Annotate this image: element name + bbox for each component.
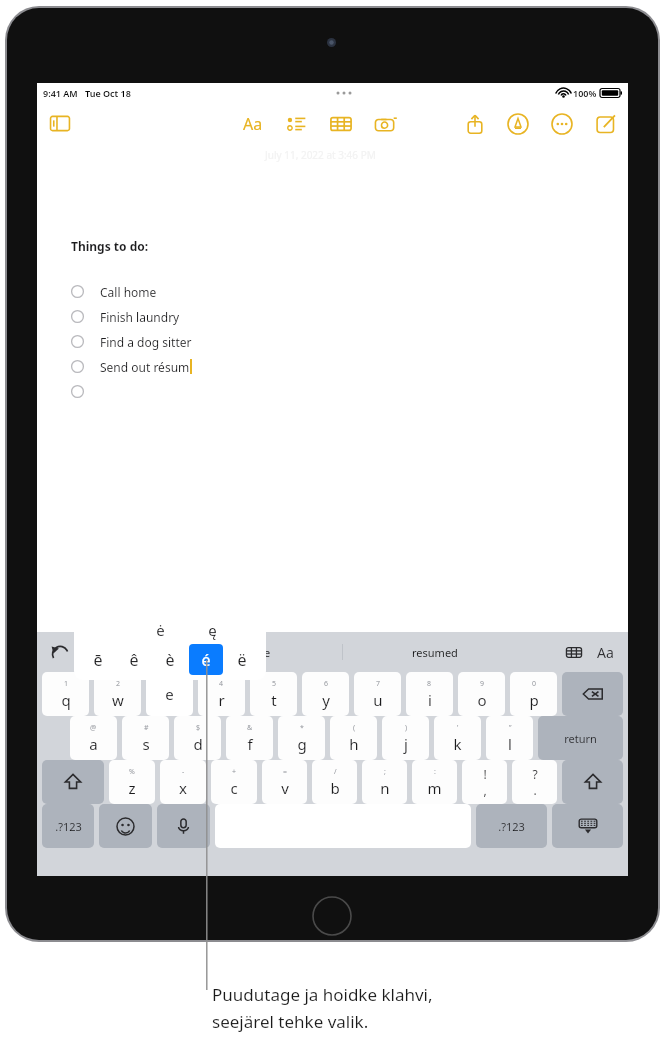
staticText: 7: [376, 679, 381, 689]
button[interactable]: Insert table: [565, 645, 583, 660]
staticText: p: [529, 690, 539, 710]
button[interactable]: Camera: [374, 114, 398, 135]
button[interactable]: -: [160, 760, 206, 804]
button[interactable]: @: [70, 716, 117, 760]
staticText: c: [230, 778, 238, 798]
button[interactable]: Numbers: [476, 804, 547, 848]
button[interactable]: 7: [354, 672, 401, 716]
staticText: $: [196, 723, 201, 733]
button[interactable]: é: [189, 644, 223, 675]
button[interactable]: Markup: [507, 113, 529, 135]
button[interactable]: Aa: [597, 643, 614, 662]
staticText: Aa: [243, 113, 263, 135]
button[interactable]: ?: [512, 760, 557, 804]
button[interactable]: &: [226, 716, 273, 760]
staticText: .: [533, 782, 537, 798]
button[interactable]: ”: [486, 716, 533, 760]
button[interactable]: Sidebar: [47, 113, 73, 134]
button[interactable]: resume: [160, 645, 342, 660]
staticText: 2: [116, 679, 121, 689]
button[interactable]: Dictate: [157, 804, 210, 848]
button[interactable]: 0: [510, 672, 557, 716]
staticText: d: [193, 734, 203, 754]
staticText: ’: [457, 723, 459, 733]
button[interactable]: Call home: [71, 279, 157, 304]
button[interactable]: Delete: [562, 672, 623, 716]
button[interactable]: ë: [225, 644, 259, 675]
button[interactable]: More: [551, 113, 573, 135]
staticText: /: [334, 767, 337, 777]
staticText: s: [142, 734, 150, 754]
button[interactable]: ė: [145, 618, 175, 642]
staticText: z: [128, 778, 136, 798]
button[interactable]: Shift: [42, 760, 104, 804]
staticText: :: [434, 767, 436, 777]
button[interactable]: +: [211, 760, 257, 804]
button[interactable]: #: [122, 716, 169, 760]
button[interactable]: :: [412, 760, 457, 804]
button[interactable]: Find a dog sitter: [71, 329, 192, 354]
button[interactable]: Emoji: [99, 804, 152, 848]
button[interactable]: ē: [81, 644, 115, 675]
button[interactable]: 2: [94, 672, 141, 716]
staticText: t: [271, 690, 277, 710]
staticText: o: [477, 690, 487, 710]
button[interactable]: *: [278, 716, 325, 760]
button[interactable]: Finish laundry: [71, 304, 180, 329]
button[interactable]: 9: [458, 672, 505, 716]
staticText: x: [179, 778, 187, 798]
staticText: ”: [509, 723, 512, 733]
button[interactable]: %: [109, 760, 155, 804]
staticText: n: [380, 778, 390, 798]
button[interactable]: $: [174, 716, 221, 760]
staticText: resume: [231, 645, 271, 660]
button[interactable]: Shift: [562, 760, 623, 804]
button[interactable]: e: [146, 672, 193, 716]
staticText: 4: [219, 679, 224, 689]
staticText: ?: [532, 766, 538, 782]
button[interactable]: 8: [406, 672, 453, 716]
button[interactable]: è: [153, 644, 187, 675]
button[interactable]: [71, 379, 100, 404]
button[interactable]: =: [262, 760, 307, 804]
staticText: u: [373, 690, 383, 710]
staticText: Send out résum: [100, 359, 190, 375]
button[interactable]: 1: [42, 672, 89, 716]
button[interactable]: resumed: [343, 645, 526, 660]
staticText: a: [89, 734, 98, 754]
staticText: ē: [93, 649, 103, 671]
button[interactable]: Undo: [49, 642, 71, 664]
button[interactable]: Return: [538, 716, 623, 760]
button[interactable]: Table: [329, 114, 353, 134]
staticText: b: [330, 778, 340, 798]
staticText: w: [112, 690, 124, 710]
staticText: -: [182, 767, 185, 777]
staticText: Find a dog sitter: [100, 334, 192, 350]
button[interactable]: ê: [117, 644, 151, 675]
staticText: ê: [129, 649, 139, 671]
button[interactable]: /: [312, 760, 357, 804]
button[interactable]: Numbers: [42, 804, 94, 848]
button[interactable]: ’: [434, 716, 481, 760]
staticText: 5: [272, 679, 277, 689]
button[interactable]: Hide keyboard: [552, 804, 623, 848]
staticText: h: [349, 734, 359, 754]
staticText: l: [508, 734, 512, 754]
button[interactable]: 6: [302, 672, 349, 716]
button[interactable]: ę: [197, 618, 227, 642]
staticText: è: [165, 649, 175, 671]
button[interactable]: 4: [198, 672, 245, 716]
button[interactable]: Share: [465, 113, 485, 135]
button[interactable]: Send out résum: [71, 354, 192, 379]
button[interactable]: Checklist: [286, 114, 308, 134]
button[interactable]: 5: [250, 672, 297, 716]
button[interactable]: New note: [595, 114, 616, 135]
staticText: Things to do:: [71, 238, 149, 254]
button[interactable]: ): [382, 716, 429, 760]
staticText: k: [453, 734, 462, 754]
button[interactable]: (: [330, 716, 377, 760]
button[interactable]: !: [462, 760, 507, 804]
button[interactable]: ;: [362, 760, 407, 804]
button[interactable]: Aa: [240, 113, 266, 135]
